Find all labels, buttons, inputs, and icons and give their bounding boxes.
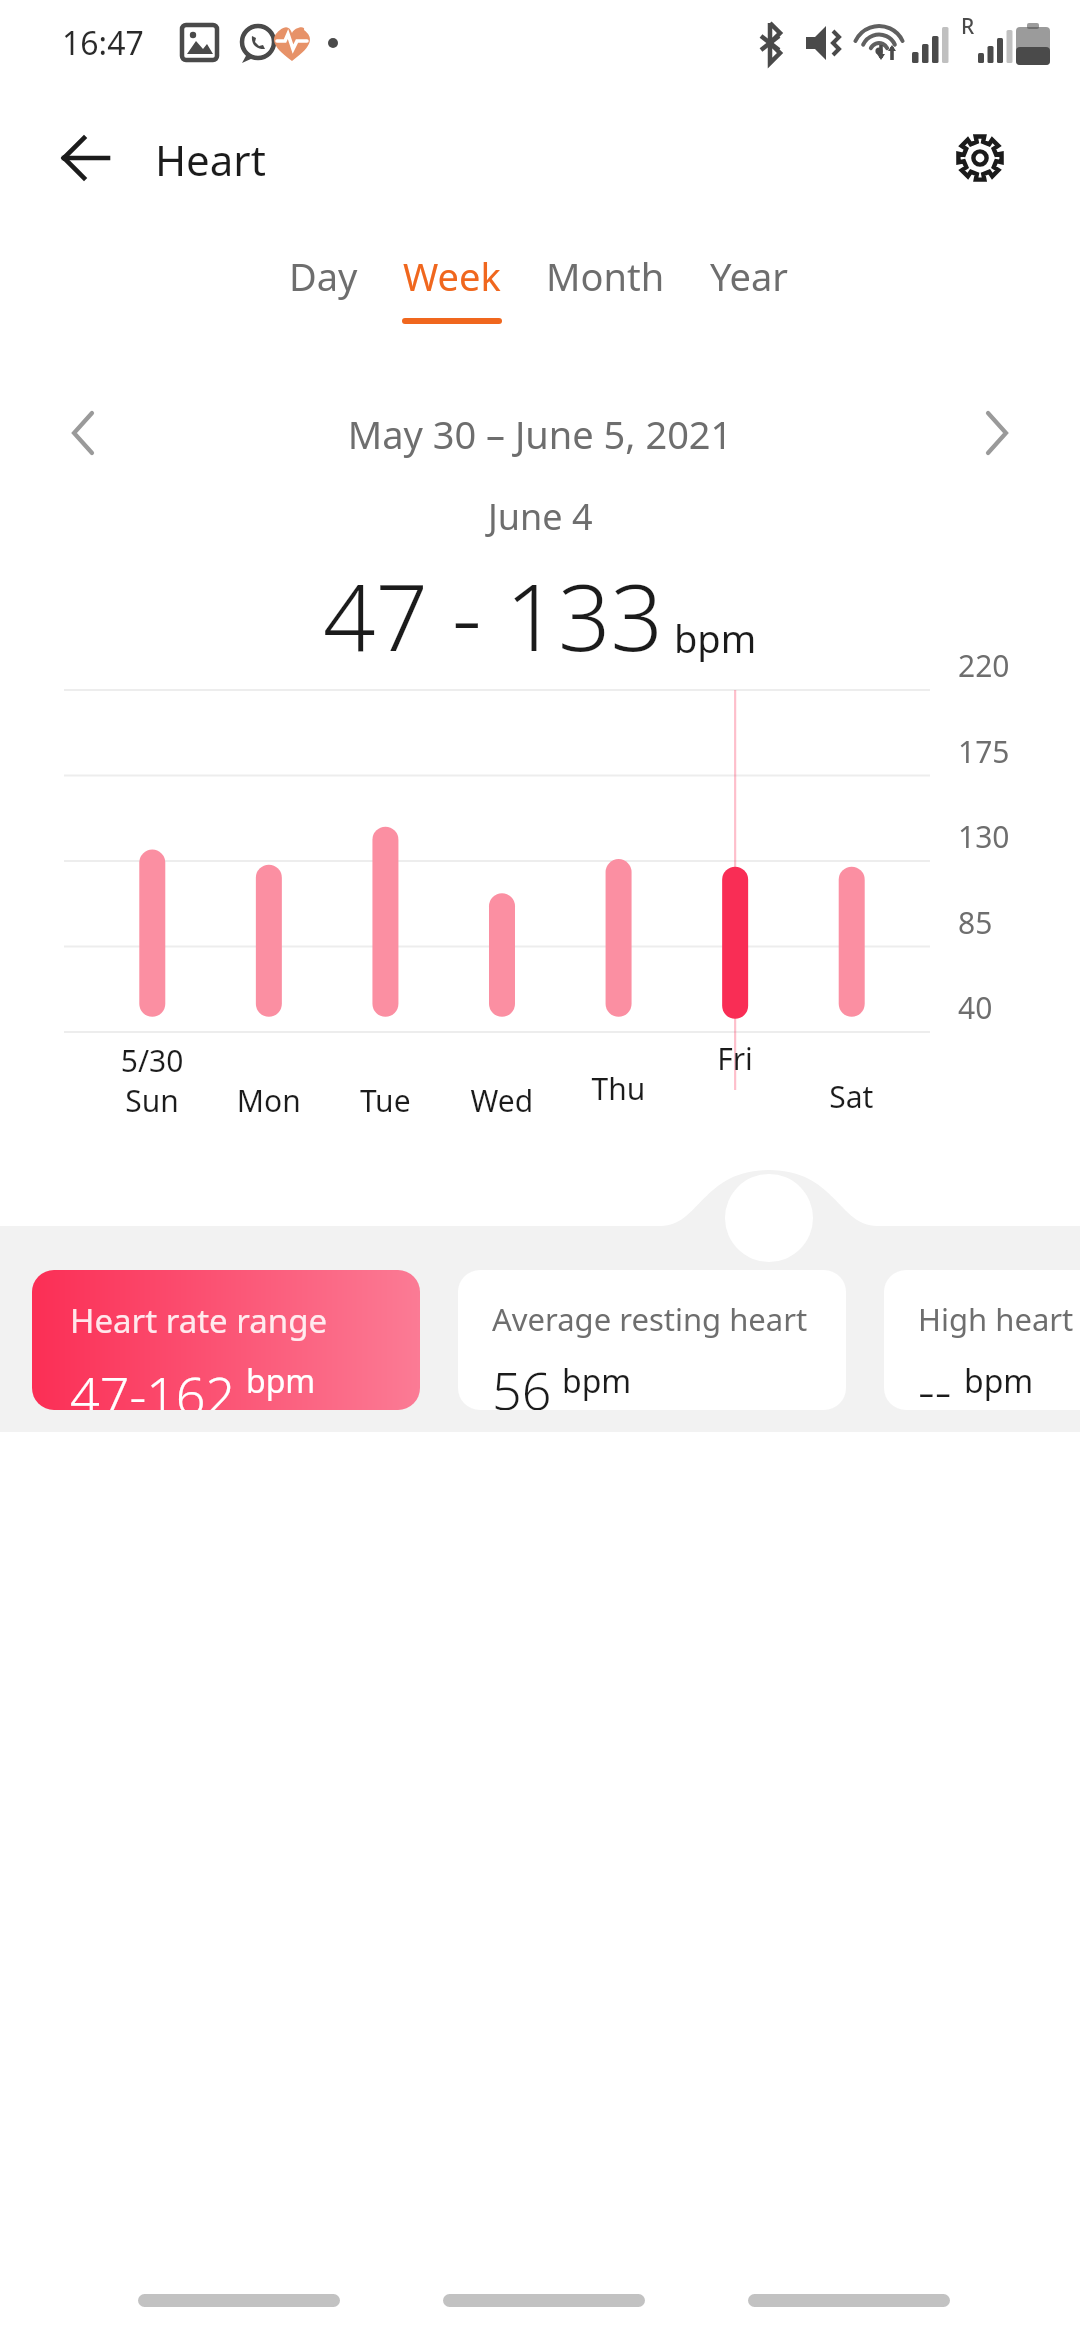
button[interactable]: [748, 2294, 950, 2307]
staticText: Average resting heart rate: [492, 1298, 846, 1340]
staticText: Heart: [155, 131, 266, 188]
button[interactable]: Settings: [940, 118, 1020, 198]
staticText: 47-162: [70, 1359, 236, 1410]
staticText: bpm: [964, 1359, 1034, 1403]
staticText: Month: [546, 250, 665, 302]
button[interactable]: Heart rate range: [32, 1270, 420, 1410]
staticText: High heart rate: [918, 1298, 1080, 1340]
staticText: Day: [289, 250, 358, 302]
button[interactable]: [443, 2294, 645, 2307]
staticText: bpm: [562, 1359, 632, 1403]
staticText: bpm: [246, 1359, 316, 1403]
button[interactable]: Next week: [956, 388, 1046, 478]
staticText: May 30 – June 5, 2021: [0, 408, 1080, 460]
staticText: --: [918, 1354, 952, 1410]
staticText: R: [961, 12, 975, 41]
staticText: 47 - 133: [323, 553, 664, 678]
staticText: June 4: [488, 492, 593, 541]
staticText: Year: [710, 250, 789, 302]
staticText: 56: [492, 1354, 552, 1410]
button[interactable]: Year: [669, 250, 829, 350]
button[interactable]: Week: [363, 250, 541, 350]
button[interactable]: Day: [251, 250, 395, 350]
staticText: Heart rate range: [70, 1298, 328, 1343]
staticText: 16:47: [62, 21, 144, 65]
staticText: bpm: [674, 612, 757, 664]
button[interactable]: Average resting heart rate: [458, 1270, 846, 1410]
button[interactable]: Previous week: [34, 388, 124, 478]
button[interactable]: High heart rate: [884, 1270, 1080, 1410]
button[interactable]: Month: [504, 250, 706, 350]
button[interactable]: [138, 2294, 340, 2307]
staticText: Week: [403, 250, 501, 302]
button[interactable]: Back: [46, 118, 126, 198]
